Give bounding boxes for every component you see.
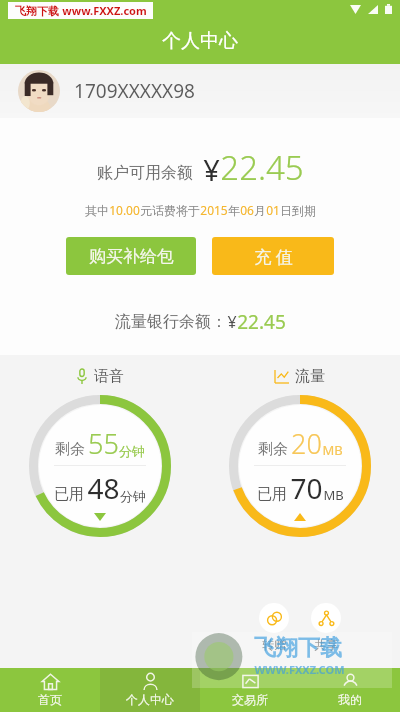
button[interactable]: 1709XXXXX98 [0, 64, 400, 118]
staticText: 个人中心 [162, 29, 238, 53]
button[interactable]: 交易所 [200, 668, 300, 712]
staticText: 共享 [314, 637, 338, 652]
staticText: 飞翔下载 [254, 634, 342, 662]
staticText: WWW.FXXZ.COM [254, 662, 345, 677]
staticText: 20 [291, 425, 322, 462]
staticText: ¥ [203, 150, 220, 189]
staticText: 70 [290, 469, 323, 507]
staticText: MB [323, 486, 344, 504]
staticText: 1709XXXXX98 [74, 78, 195, 104]
staticText: 元话费将于 [140, 203, 200, 218]
staticText: 流量 [295, 367, 325, 386]
staticText: 22.45 [220, 145, 304, 190]
staticText: 飞翔下载 [15, 4, 59, 18]
staticText: 06 [240, 202, 254, 218]
button[interactable]: 首页 [0, 668, 100, 712]
button[interactable]: 个人中心 [100, 668, 200, 712]
staticText: 2015 [200, 202, 228, 218]
staticText: 剩余 [258, 440, 288, 459]
staticText: 10.00 [109, 202, 140, 218]
staticText: 我的 [338, 692, 362, 707]
staticText: 年 [228, 203, 240, 218]
staticText: 分钟 [119, 443, 145, 459]
staticText: 交易所 [232, 692, 268, 707]
staticText: 首页 [38, 692, 62, 707]
staticText: MB [322, 441, 343, 459]
staticText: www.FXXZ.com [62, 3, 147, 18]
staticText: 充 值 [254, 245, 293, 268]
staticText: 流量银行余额： [115, 312, 227, 332]
staticText: 账户可用余额 [97, 163, 193, 183]
staticText: 已用 [54, 485, 84, 504]
staticText: 其中 [85, 203, 109, 218]
button[interactable]: 我的 [300, 668, 400, 712]
staticText: 语音 [94, 367, 124, 386]
staticText: 个人中心 [126, 692, 174, 707]
staticText: 分钟 [120, 488, 146, 504]
button[interactable]: 充 值 [212, 237, 334, 275]
staticText: 55 [88, 425, 119, 462]
staticText: 22.45 [237, 309, 286, 335]
staticText: 已用 [257, 485, 287, 504]
staticText: 日到期 [280, 203, 316, 218]
staticText: 月 [254, 203, 266, 218]
staticText: 转赠 [262, 637, 286, 652]
button[interactable]: 共享 [311, 603, 341, 652]
button[interactable]: 购买补给包 [66, 237, 196, 275]
button[interactable]: 转赠 [259, 603, 289, 652]
staticText: ¥ [227, 311, 237, 333]
staticText: 购买补给包 [89, 246, 174, 267]
staticText: 48 [87, 469, 120, 507]
staticText: 01 [266, 202, 280, 218]
staticText: 剩余 [55, 440, 85, 459]
